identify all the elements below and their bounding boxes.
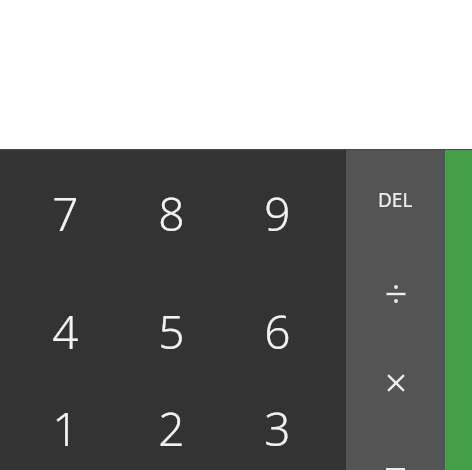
button[interactable]: 1: [12, 386, 118, 470]
button[interactable]: 6: [224, 276, 330, 386]
staticText: 3: [264, 397, 291, 460]
staticText: 4: [52, 300, 79, 363]
staticText: 6: [264, 300, 291, 363]
button[interactable]: 9: [224, 150, 330, 276]
staticText: DEL: [378, 187, 413, 213]
staticText: 2: [158, 397, 185, 460]
button[interactable]: DEL: [346, 150, 445, 249]
button[interactable]: 2: [118, 386, 224, 470]
button[interactable]: Subtract: [346, 427, 445, 470]
button[interactable]: Multiply: [346, 338, 445, 427]
staticText: 7: [52, 182, 79, 245]
button[interactable]: Divide: [346, 249, 445, 338]
staticText: 1: [52, 397, 79, 460]
button[interactable]: 7: [12, 150, 118, 276]
button[interactable]: 8: [118, 150, 224, 276]
staticText: 5: [158, 300, 185, 363]
button[interactable]: 5: [118, 276, 224, 386]
staticText: 8: [158, 182, 185, 245]
button[interactable]: 3: [224, 386, 330, 470]
button[interactable]: 4: [12, 276, 118, 386]
staticText: 9: [264, 182, 291, 245]
